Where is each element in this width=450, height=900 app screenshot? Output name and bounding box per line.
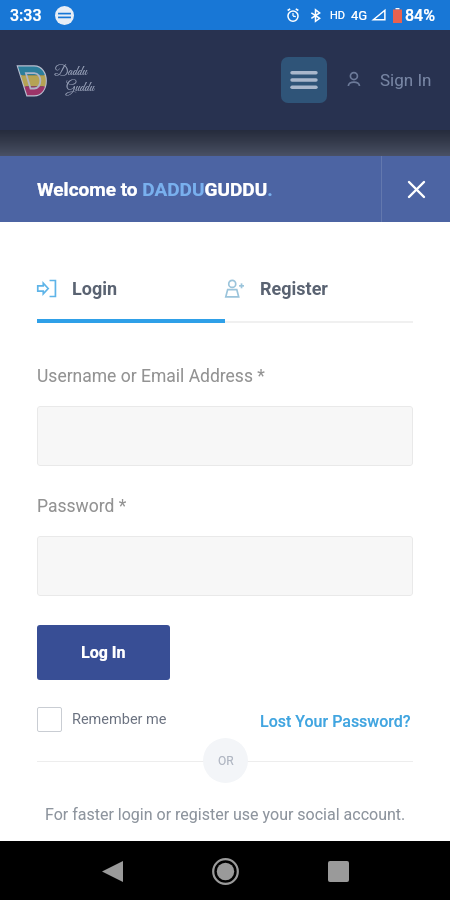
staticText: 4G <box>351 8 368 23</box>
staticText: Sign In <box>380 70 432 90</box>
staticText: Log In <box>81 643 126 662</box>
button[interactable]: Lost Your Password? <box>260 712 411 731</box>
staticText: Welcome to DADDUGUDDU. <box>37 178 273 200</box>
staticText: For faster login or register use your so… <box>45 805 406 824</box>
button[interactable]: Close <box>382 156 450 222</box>
button[interactable]: Log In <box>37 625 170 680</box>
staticText: Username or Email Address * <box>37 366 265 387</box>
button[interactable]: Back <box>89 848 135 894</box>
staticText: Password * <box>37 496 127 517</box>
staticText: OR <box>218 754 234 768</box>
staticText: HD <box>330 9 346 22</box>
staticText: Login <box>72 278 118 299</box>
button[interactable]: Home <box>202 848 248 894</box>
staticText: Daddu <box>54 64 87 80</box>
button[interactable]: Recent apps <box>315 848 361 894</box>
button[interactable]: Sign In <box>346 70 432 90</box>
staticText: Guddu <box>66 80 95 96</box>
staticText: Register <box>260 278 328 299</box>
button[interactable]: Menu <box>281 57 327 103</box>
staticText: 84% <box>405 6 435 25</box>
button[interactable]: Login <box>37 278 225 299</box>
staticText: Remember me <box>72 711 167 728</box>
staticText: 3:33 <box>10 6 42 25</box>
button[interactable]: Register <box>225 278 328 299</box>
button[interactable]: Remember me <box>37 707 167 732</box>
